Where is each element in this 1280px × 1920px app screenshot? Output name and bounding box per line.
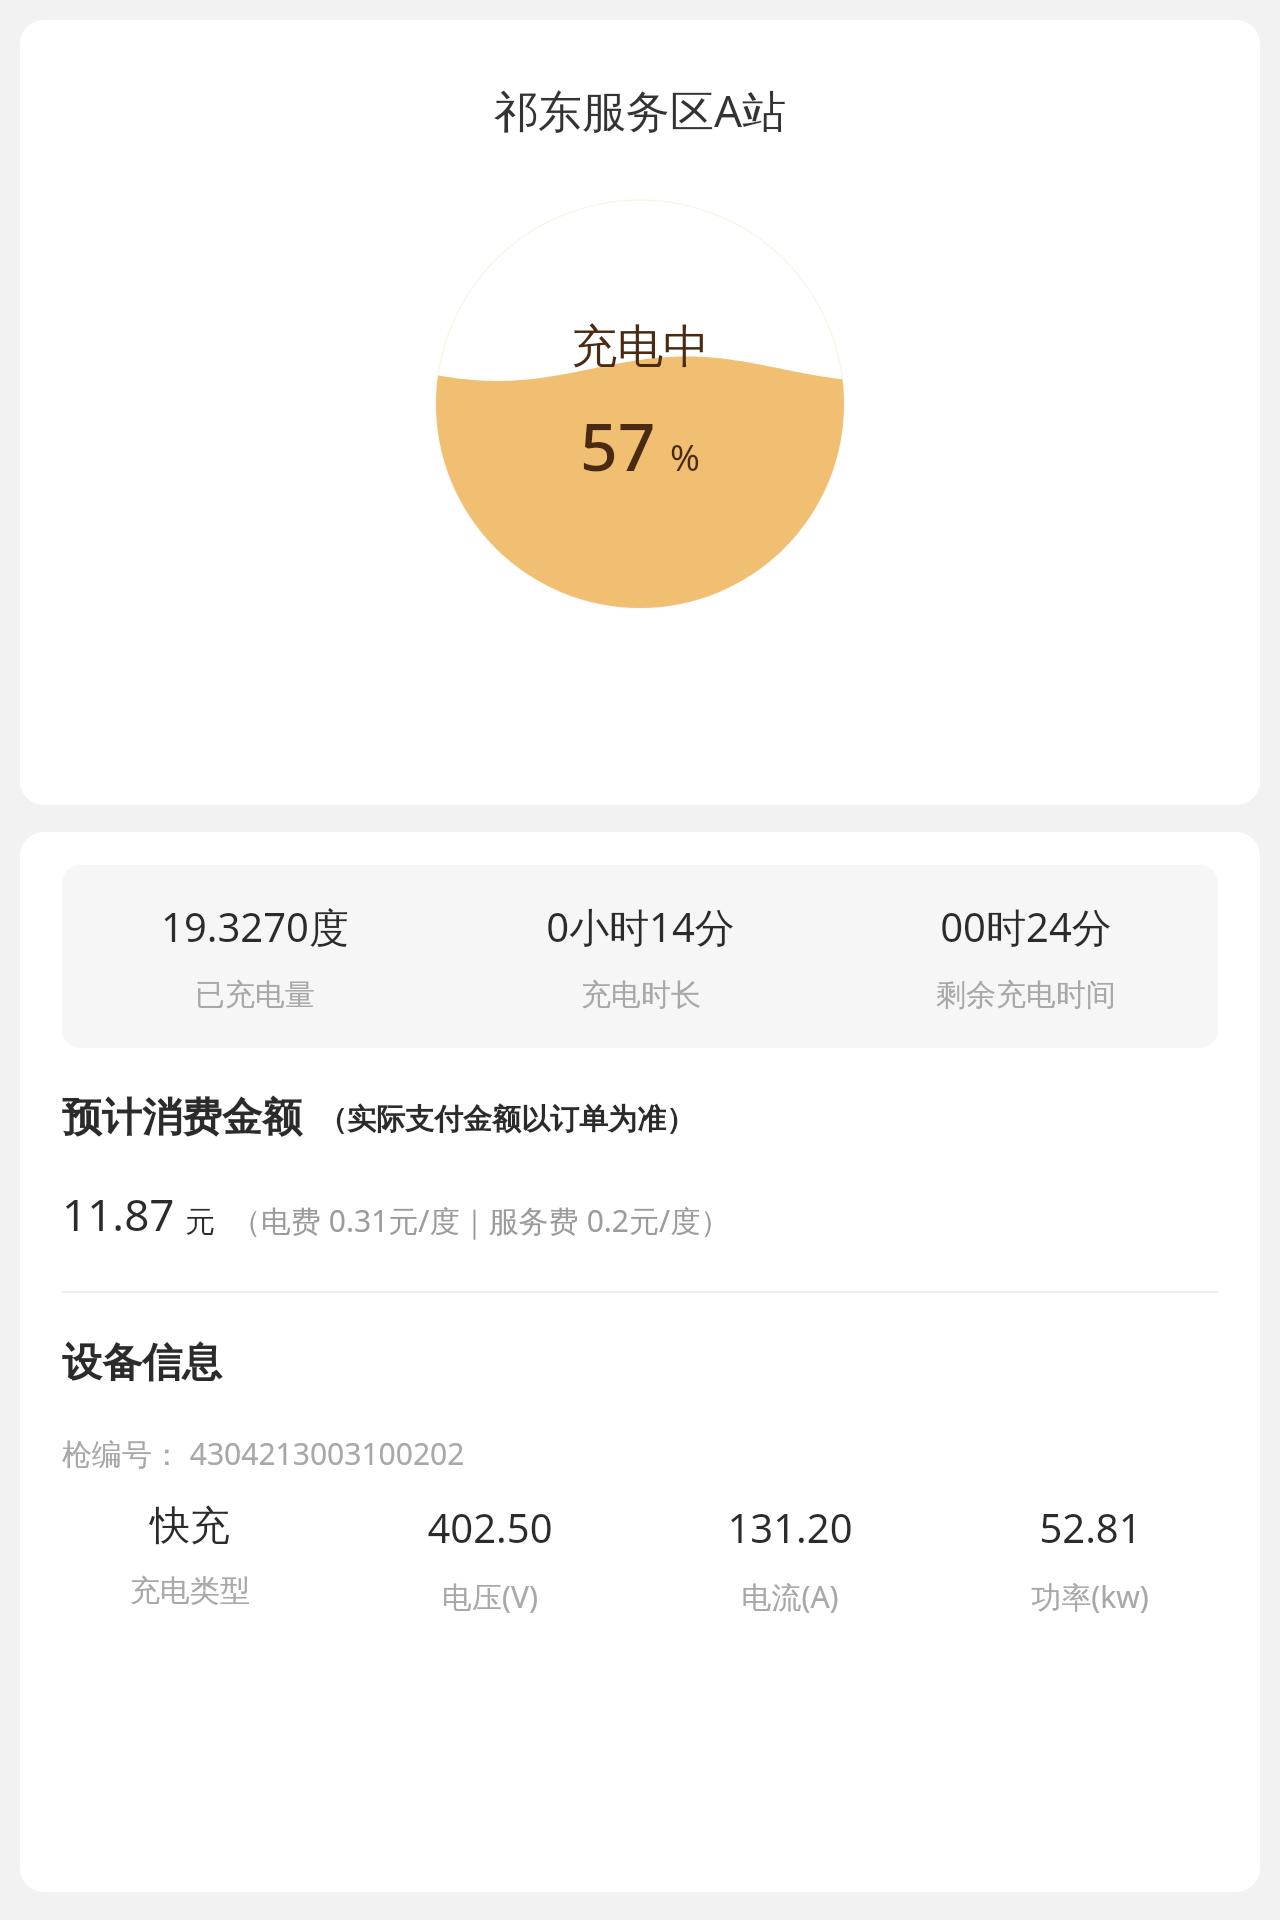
- staticText: 剩余充电时间: [936, 976, 1116, 1014]
- staticText: 充电中: [571, 318, 709, 376]
- staticText: %: [670, 433, 700, 482]
- button[interactable]: 52.81: [940, 1500, 1240, 1617]
- staticText: 电压(V): [442, 1576, 538, 1617]
- button[interactable]: 131.20: [640, 1500, 940, 1617]
- button[interactable]: 快充: [40, 1500, 340, 1610]
- staticText: （电费 0.31元/度｜服务费 0.2元/度）: [231, 1200, 731, 1241]
- staticText: 元: [185, 1203, 215, 1241]
- staticText: 402.50: [427, 1500, 553, 1554]
- staticText: 充电时长: [581, 976, 701, 1014]
- staticText: （实际支付金额以订单为准）: [318, 1101, 695, 1138]
- staticText: 11.87: [62, 1184, 175, 1244]
- staticText: 功率(kw): [1031, 1576, 1149, 1617]
- button[interactable]: 0小时14分: [448, 899, 833, 1014]
- staticText: 枪编号： 4304213003100202: [62, 1433, 465, 1474]
- button[interactable]: 402.50: [340, 1500, 640, 1617]
- staticText: 设备信息: [62, 1337, 222, 1387]
- staticText: 52.81: [1039, 1500, 1142, 1554]
- staticText: 57: [580, 400, 656, 490]
- staticText: 电流(A): [741, 1576, 839, 1617]
- staticText: 131.20: [727, 1500, 853, 1554]
- staticText: 充电类型: [130, 1572, 250, 1610]
- staticText: 19.3270度: [161, 899, 349, 954]
- staticText: 祁东服务区A站: [494, 80, 787, 140]
- button[interactable]: 00时24分: [833, 899, 1218, 1014]
- staticText: 0小时14分: [546, 899, 735, 954]
- staticText: 00时24分: [940, 899, 1112, 954]
- staticText: 快充: [150, 1500, 230, 1550]
- staticText: 预计消费金额: [62, 1092, 302, 1142]
- staticText: 已充电量: [195, 976, 315, 1014]
- button[interactable]: 19.3270度: [62, 899, 448, 1014]
